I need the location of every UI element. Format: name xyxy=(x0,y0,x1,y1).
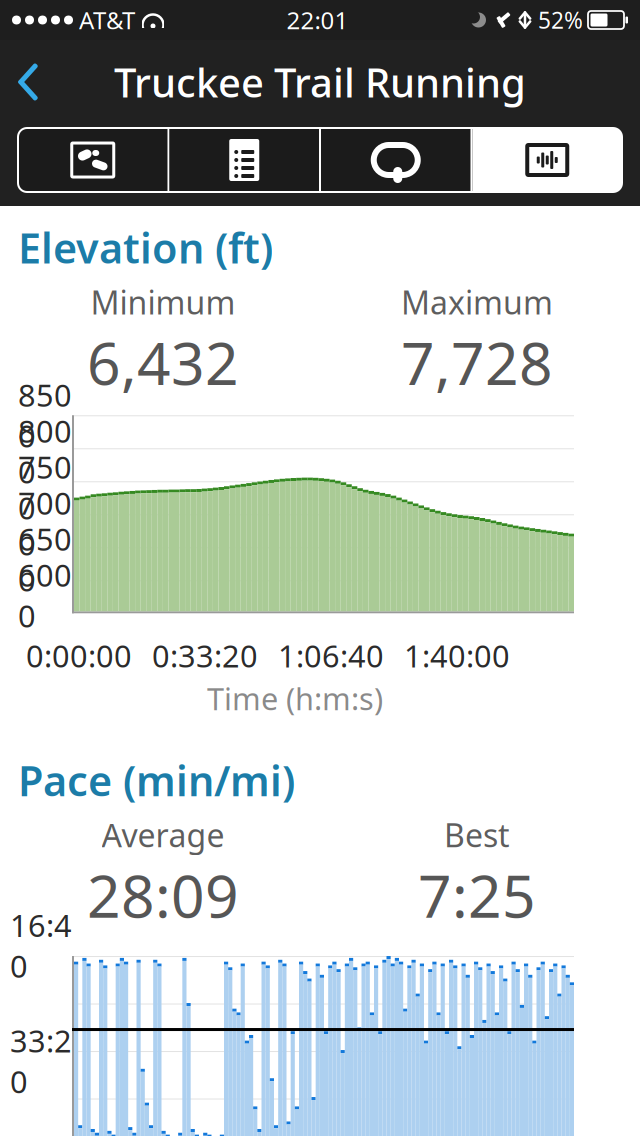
staticText: 16:40 xyxy=(10,905,72,986)
staticText: 7500 xyxy=(18,447,72,528)
staticText: 22:01 xyxy=(286,4,348,36)
button[interactable]: Back xyxy=(0,54,56,110)
staticText: 0:00:00 xyxy=(26,635,132,676)
staticText: 6,432 xyxy=(87,323,239,401)
button[interactable]: Graphs xyxy=(472,128,622,192)
staticText: 33:20 xyxy=(10,1020,72,1102)
staticText: 28:09 xyxy=(87,856,239,934)
staticText: 0:33:20 xyxy=(152,635,258,676)
staticText: 7,728 xyxy=(401,323,553,401)
staticText: 1:40:00 xyxy=(404,635,510,676)
staticText: 6000 xyxy=(18,555,72,636)
staticText: Minimum xyxy=(90,281,235,323)
staticText: Pace (min/mi) xyxy=(18,753,295,808)
staticText: 7:25 xyxy=(418,856,536,934)
staticText: 6500 xyxy=(18,519,72,600)
staticText: Time (h:m:s) xyxy=(207,678,383,719)
button[interactable]: Map xyxy=(18,128,167,192)
staticText: Maximum xyxy=(401,281,553,323)
staticText: Truckee Trail Running xyxy=(114,55,526,108)
staticText: 52% xyxy=(538,5,583,35)
button[interactable]: Details xyxy=(169,128,319,192)
staticText: 1:06:40 xyxy=(278,635,384,676)
staticText: Best xyxy=(444,814,510,856)
staticText: 8500 xyxy=(18,375,72,456)
button[interactable]: Laps xyxy=(321,128,470,192)
staticText: 8000 xyxy=(18,411,72,492)
staticText: Average xyxy=(101,814,224,856)
staticText: Elevation (ft) xyxy=(18,220,273,275)
staticText: AT&T xyxy=(79,4,135,36)
staticText: 7000 xyxy=(18,483,72,564)
